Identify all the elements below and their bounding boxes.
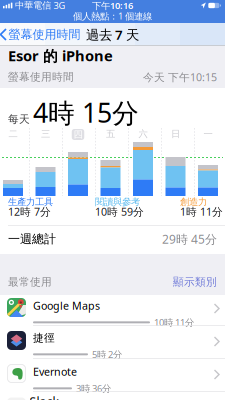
- button[interactable]: 顯示類別: [173, 275, 217, 288]
- staticText: 3G: [53, 0, 65, 12]
- staticText: 一: [203, 128, 212, 140]
- staticText: 生產力工具: [8, 196, 53, 208]
- staticText: 五: [106, 128, 115, 140]
- staticText: Esor 的 iPhone: [8, 46, 113, 65]
- staticText: 三: [41, 128, 50, 140]
- staticText: 3時 36分: [76, 382, 111, 395]
- staticText: 過去 7 天: [86, 26, 139, 43]
- staticText: 顯示類別: [173, 275, 217, 288]
- staticText: 12時 7分: [8, 204, 51, 219]
- staticText: Google Maps: [33, 298, 100, 313]
- staticText: Evernote: [33, 364, 77, 379]
- staticText: 下午10:16: [92, 0, 133, 12]
- staticText: 一週總計: [8, 232, 56, 246]
- staticText: 中華電信: [15, 0, 51, 11]
- staticText: 最常使用: [8, 275, 52, 288]
- staticText: 個人熱點：1 個連線: [73, 10, 152, 22]
- staticText: 5時 2分: [92, 348, 122, 360]
- staticText: 螢幕使用時間: [8, 70, 74, 83]
- staticText: 每天: [8, 113, 30, 126]
- staticText: 4時 15分: [33, 95, 139, 130]
- staticText: 創造力: [180, 196, 207, 208]
- staticText: 六: [138, 128, 147, 140]
- staticText: 29時 45分: [162, 231, 217, 247]
- staticText: 螢幕使用時間: [8, 27, 80, 42]
- staticText: 四: [73, 129, 82, 140]
- staticText: 閱讀與參考: [95, 196, 140, 208]
- staticText: 二: [8, 128, 17, 140]
- staticText: 10時 59分: [95, 204, 144, 219]
- staticText: Slack: [29, 393, 58, 400]
- button[interactable]: 捷徑: [0, 325, 225, 358]
- staticText: 捷徑: [33, 331, 55, 345]
- button[interactable]: Google Maps: [0, 292, 225, 325]
- staticText: 10時 11分: [154, 316, 194, 329]
- staticText: 日: [171, 128, 180, 140]
- staticText: 1時 11分: [180, 204, 223, 219]
- staticText: 今天 下午10:15: [143, 70, 217, 84]
- button[interactable]: Evernote: [0, 358, 225, 391]
- button[interactable]: 螢幕使用時間: [0, 27, 80, 42]
